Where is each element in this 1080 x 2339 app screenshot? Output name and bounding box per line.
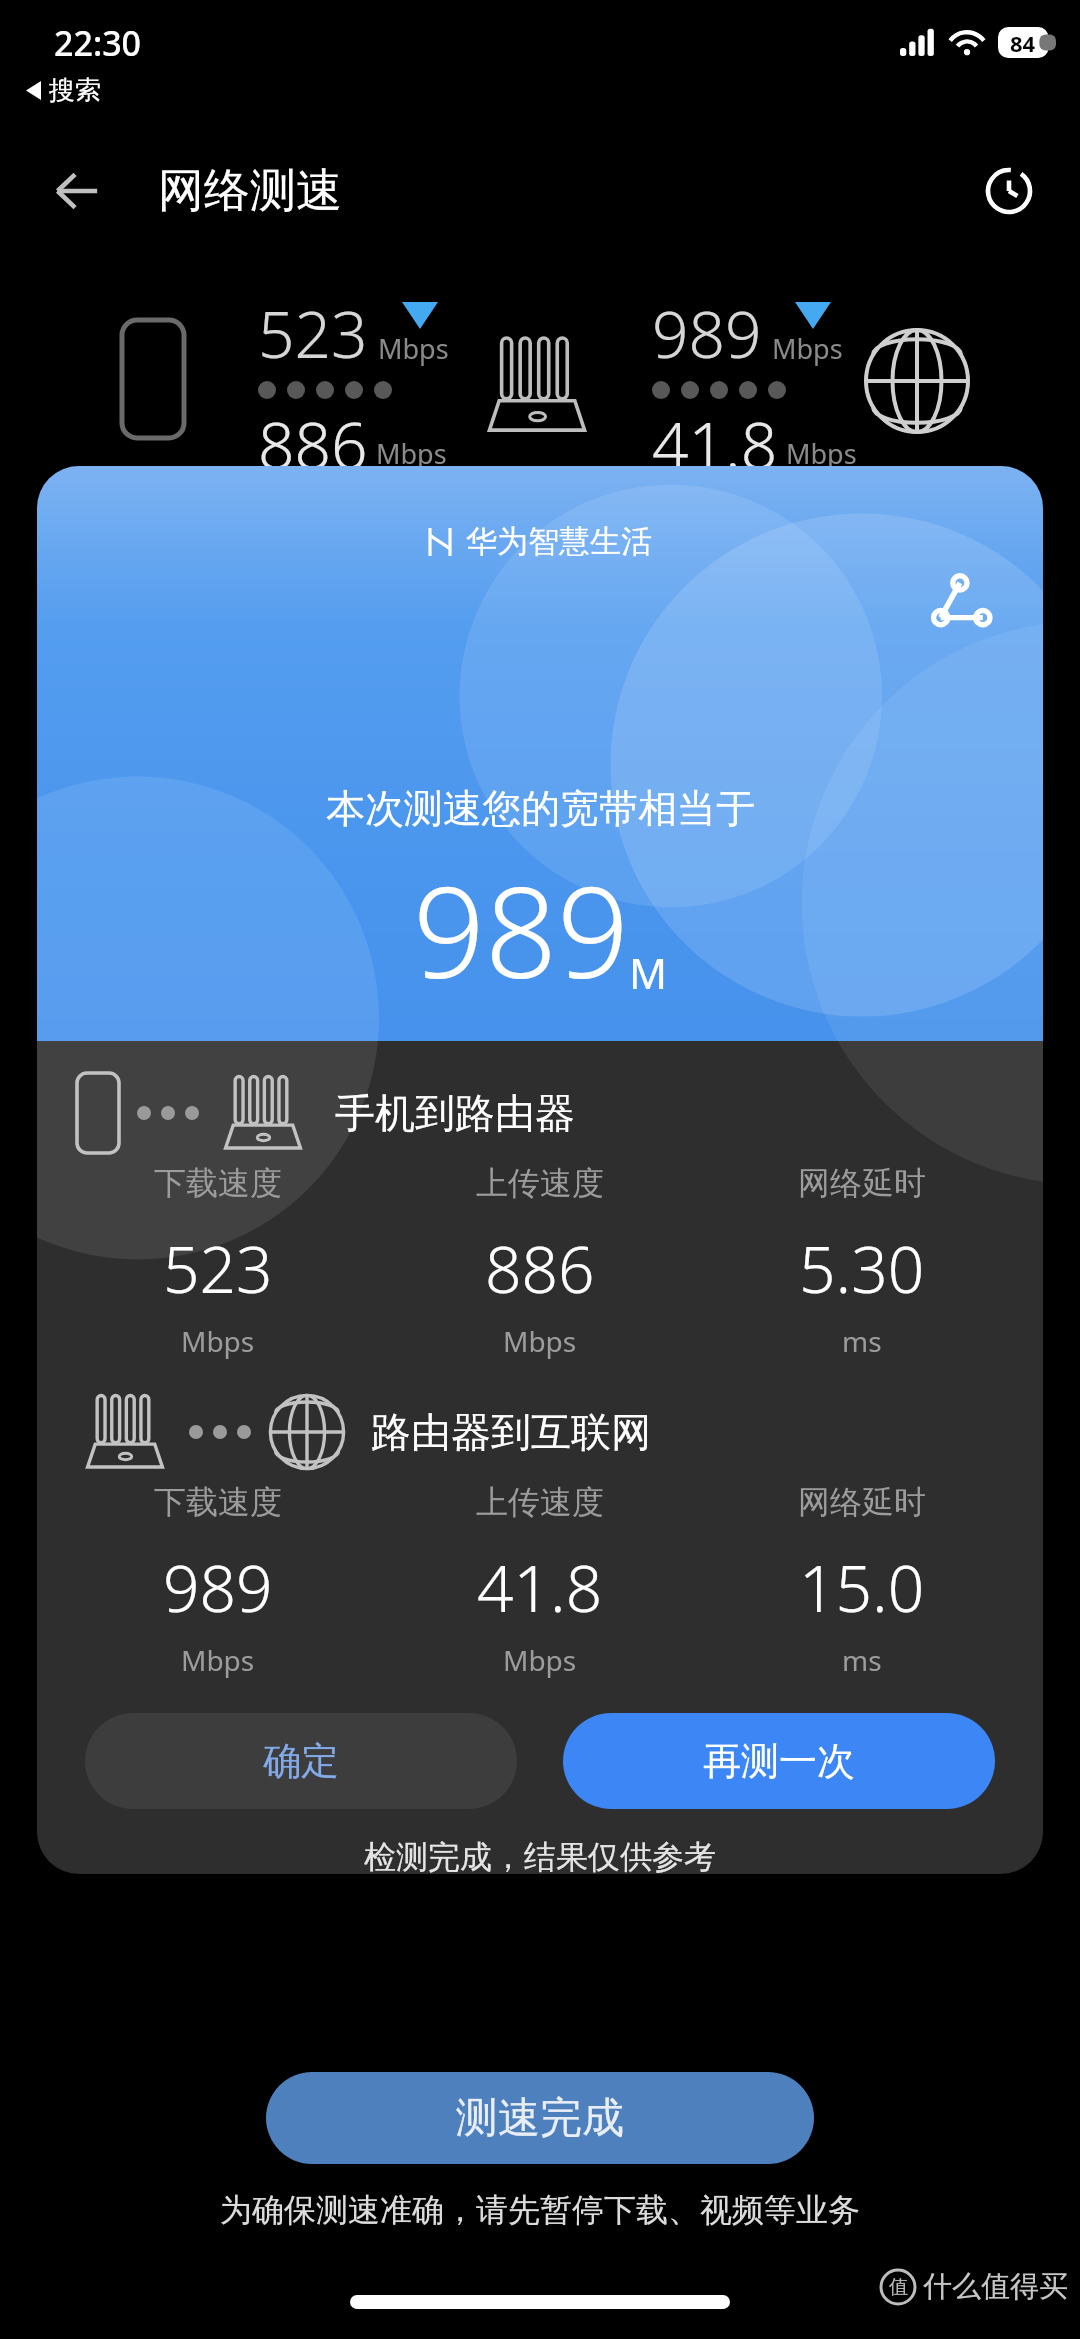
staticText: 989 [163, 1544, 273, 1631]
staticText: 84 [1010, 28, 1036, 58]
staticText: 41.8 [652, 401, 778, 488]
button[interactable]: Share [923, 564, 1003, 644]
staticText: 523 [258, 290, 368, 377]
staticText: 测速完成 [456, 2092, 624, 2145]
staticText: 989 [413, 843, 629, 1015]
staticText: 22:30 [54, 20, 142, 66]
staticText: Mbps [503, 1641, 577, 1679]
staticText: M [629, 944, 668, 1001]
staticText: 路由器到互联网 [371, 1407, 651, 1457]
staticText: 886 [485, 1225, 595, 1312]
staticText: 41.8 [477, 1544, 603, 1631]
staticText: ms [842, 1322, 882, 1360]
staticText: 搜索 [49, 74, 101, 107]
staticText: Mbps [181, 1641, 255, 1679]
staticText: 523 [163, 1225, 273, 1312]
staticText: 网络延时 [798, 1163, 926, 1203]
staticText: Mbps [772, 330, 843, 367]
staticText: 网络测速 [158, 162, 342, 220]
staticText: Mbps [378, 330, 449, 367]
staticText: Mbps [181, 1322, 255, 1360]
staticText: 再测一次 [703, 1737, 855, 1785]
staticText: 值 [889, 2275, 908, 2299]
button[interactable]: History [962, 144, 1056, 238]
button[interactable]: 测速完成 [266, 2072, 814, 2164]
staticText: 确定 [263, 1737, 339, 1785]
staticText: Mbps [376, 435, 447, 472]
staticText: 手机到路由器 [335, 1088, 575, 1138]
staticText: 989 [652, 290, 762, 377]
staticText: 网络延时 [798, 1482, 926, 1522]
staticText: 886 [258, 401, 368, 488]
staticText: 下载速度 [154, 1163, 282, 1203]
staticText: 本次测速您的宽带相当于 [326, 784, 755, 833]
staticText: 下载速度 [154, 1482, 282, 1522]
button[interactable]: Back [30, 145, 122, 237]
staticText: 15.0 [799, 1544, 925, 1631]
staticText: 华为智慧生活 [466, 522, 652, 561]
staticText: 5.30 [799, 1225, 925, 1312]
staticText: 上传速度 [476, 1482, 604, 1522]
staticText: 什么值得买 [923, 2268, 1068, 2305]
staticText: ms [842, 1641, 882, 1679]
staticText: 检测完成，结果仅供参考 [37, 1837, 1043, 1874]
staticText: Mbps [786, 435, 857, 472]
staticText: 为确保测速准确，请先暂停下载、视频等业务 [220, 2190, 860, 2230]
staticText: Mbps [503, 1322, 577, 1360]
button[interactable]: 再测一次 [563, 1713, 995, 1809]
button[interactable]: 确定 [85, 1713, 517, 1809]
staticText: 上传速度 [476, 1163, 604, 1203]
